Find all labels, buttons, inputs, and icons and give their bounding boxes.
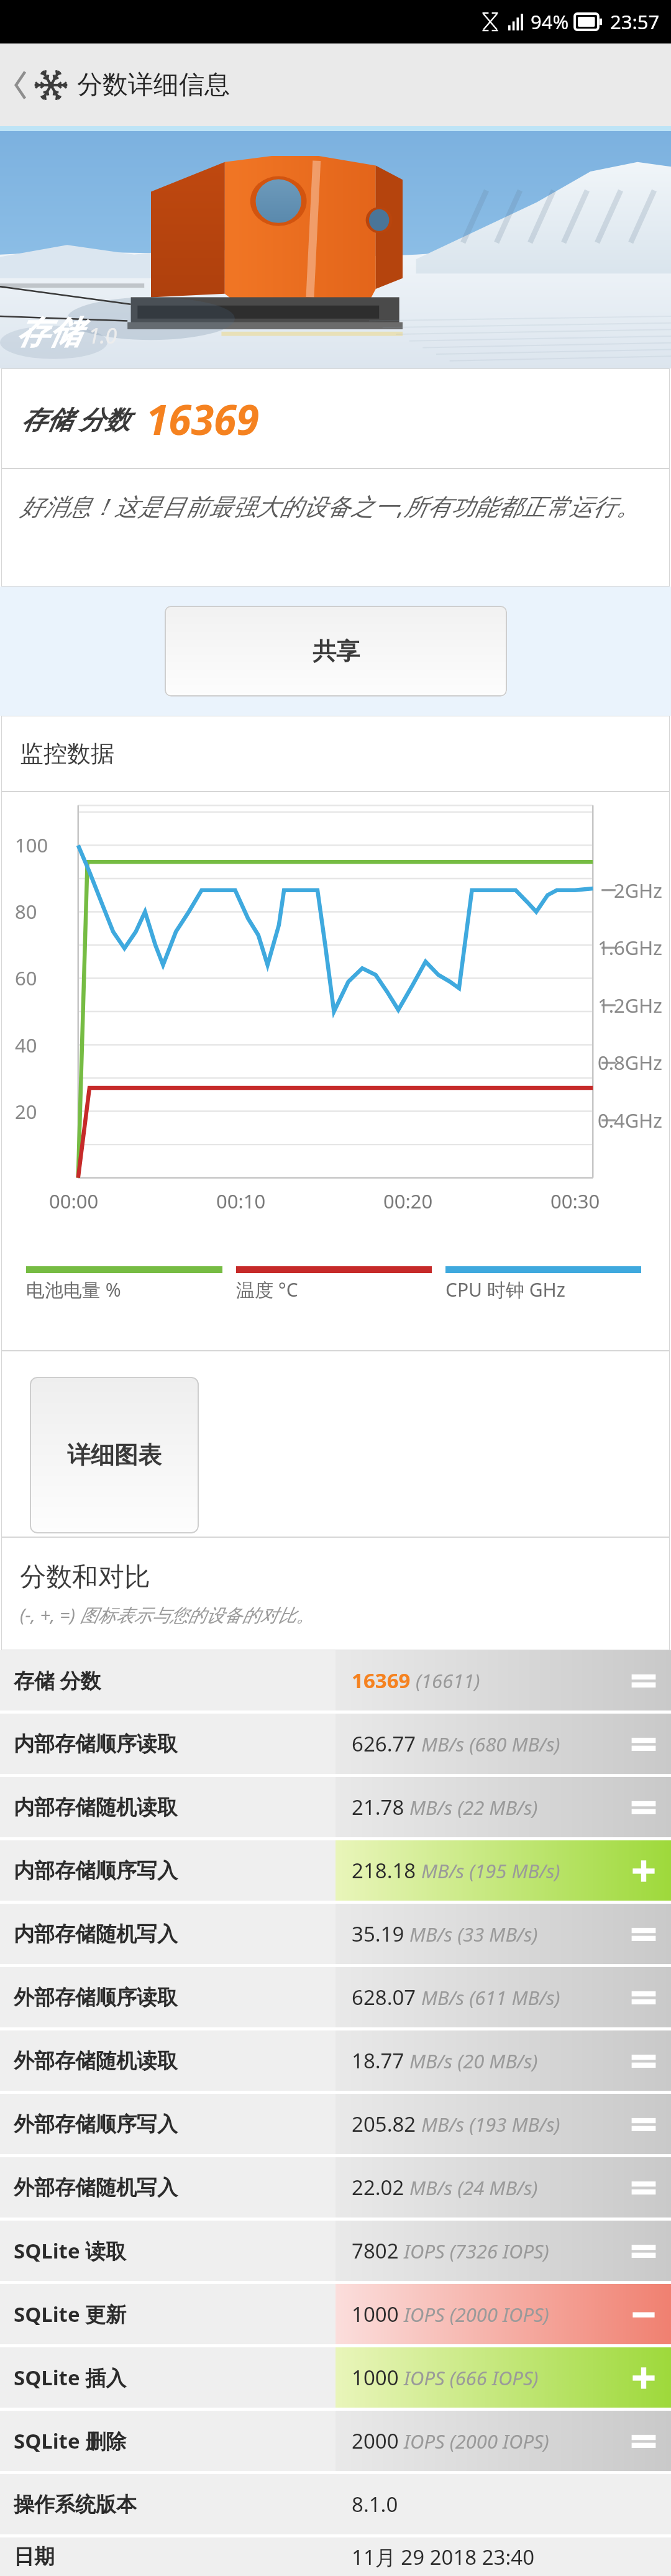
- staticText: 218.18: [352, 1857, 416, 1884]
- staticText: 内部存储随机读取: [14, 1794, 178, 1820]
- staticText: 7802: [352, 2237, 399, 2265]
- button[interactable]: 详细图表: [30, 1377, 199, 1533]
- staticText: IOPS (2000 IOPS): [404, 2428, 549, 2454]
- staticText: 存储 分数: [14, 1666, 101, 1694]
- staticText: MB/s (195 MB/s): [421, 1858, 560, 1884]
- button[interactable]: 内部存储顺序写入: [0, 1840, 671, 1901]
- staticText: 操作系统版本: [14, 2492, 137, 2518]
- staticText: 100: [15, 832, 48, 858]
- staticText: (-, +, =) 图标表示与您的设备的对比。: [20, 1602, 314, 1627]
- button[interactable]: 存储 分数: [0, 1650, 671, 1710]
- staticText: SQLite 删除: [14, 2427, 127, 2455]
- staticText: 分数和对比: [20, 1561, 150, 1594]
- staticText: 电池电量 %: [26, 1277, 121, 1302]
- button[interactable]: 外部存储顺序读取: [0, 1967, 671, 2027]
- button[interactable]: SQLite 插入: [0, 2347, 671, 2408]
- staticText: 00:30: [550, 1188, 600, 1214]
- staticText: 分数详细信息: [77, 69, 230, 101]
- staticText: CPU 时钟 GHz: [445, 1277, 565, 1302]
- staticText: IOPS (7326 IOPS): [404, 2238, 549, 2264]
- staticText: 626.77: [352, 1730, 416, 1758]
- staticText: 1000: [352, 2364, 399, 2391]
- staticText: 0.8GHz: [598, 1049, 662, 1076]
- staticText: 外部存储顺序写入: [14, 2111, 178, 2137]
- staticText: 23:57: [610, 9, 660, 35]
- staticText: 00:10: [216, 1188, 266, 1214]
- staticText: MB/s (680 MB/s): [421, 1731, 560, 1757]
- staticText: 好消息！这是目前最强大的设备之一,所有功能都正常运行。: [20, 490, 640, 522]
- staticText: 1000: [352, 2300, 399, 2328]
- staticText: 2000: [352, 2427, 399, 2455]
- button[interactable]: 内部存储随机写入: [0, 1904, 671, 1964]
- staticText: 详细图表: [67, 1440, 162, 1470]
- button[interactable]: Back: [9, 62, 32, 108]
- staticText: 00:00: [49, 1188, 99, 1214]
- button[interactable]: 内部存储顺序读取: [0, 1714, 671, 1774]
- staticText: 内部存储顺序读取: [14, 1731, 178, 1757]
- staticText: 00:20: [383, 1188, 433, 1214]
- button[interactable]: SQLite 读取: [0, 2221, 671, 2281]
- staticText: 日期: [14, 2544, 55, 2570]
- staticText: 存储 分数: [21, 401, 130, 436]
- staticText: 温度 °C: [236, 1277, 298, 1302]
- staticText: 内部存储顺序写入: [14, 1858, 178, 1884]
- staticText: (16611): [416, 1668, 480, 1694]
- staticText: SQLite 更新: [14, 2300, 127, 2328]
- button[interactable]: SQLite 更新: [0, 2284, 671, 2344]
- staticText: MB/s (24 MB/s): [409, 2175, 538, 2201]
- staticText: 94%: [531, 9, 569, 35]
- staticText: 外部存储随机写入: [14, 2175, 178, 2201]
- staticText: MB/s (33 MB/s): [409, 1921, 538, 1947]
- staticText: 2GHz: [614, 877, 662, 903]
- button[interactable]: 外部存储顺序写入: [0, 2094, 671, 2154]
- staticText: 21.78: [352, 1793, 404, 1821]
- staticText: 外部存储随机读取: [14, 2048, 178, 2074]
- staticText: 监控数据: [20, 739, 114, 769]
- staticText: 628.07: [352, 1983, 416, 2011]
- button[interactable]: 外部存储随机写入: [0, 2157, 671, 2217]
- button[interactable]: 内部存储随机读取: [0, 1777, 671, 1837]
- button[interactable]: 外部存储随机读取: [0, 2030, 671, 2091]
- staticText: 80: [15, 898, 37, 925]
- staticText: MB/s (193 MB/s): [421, 2111, 560, 2137]
- staticText: SQLite 插入: [14, 2364, 127, 2391]
- staticText: 外部存储顺序读取: [14, 1985, 178, 2011]
- staticText: 60: [15, 965, 37, 991]
- staticText: 1.0: [88, 321, 117, 350]
- staticText: 16369: [146, 391, 259, 447]
- staticText: IOPS (666 IOPS): [404, 2365, 539, 2391]
- button[interactable]: SQLite 删除: [0, 2411, 671, 2471]
- staticText: MB/s (22 MB/s): [409, 1794, 538, 1820]
- staticText: 20: [15, 1098, 37, 1125]
- button[interactable]: 日期: [0, 2537, 671, 2576]
- staticText: 共享: [313, 636, 360, 666]
- staticText: MB/s (20 MB/s): [409, 2048, 538, 2074]
- staticText: 16369: [352, 1666, 411, 1694]
- staticText: 35.19: [352, 1920, 404, 1948]
- staticText: MB/s (611 MB/s): [421, 1985, 560, 2011]
- button[interactable]: 共享: [165, 606, 507, 697]
- staticText: 存储: [16, 313, 81, 354]
- staticText: 8.1.0: [352, 2490, 398, 2518]
- staticText: 0.4GHz: [598, 1107, 662, 1133]
- staticText: 1.6GHz: [598, 934, 662, 961]
- staticText: 18.77: [352, 2047, 404, 2075]
- staticText: 11月 29 2018 23:40: [352, 2543, 535, 2571]
- staticText: 40: [15, 1032, 37, 1058]
- staticText: 205.82: [352, 2110, 416, 2138]
- staticText: IOPS (2000 IOPS): [404, 2301, 549, 2327]
- staticText: 内部存储随机写入: [14, 1921, 178, 1947]
- button[interactable]: 操作系统版本: [0, 2474, 671, 2534]
- staticText: 22.02: [352, 2173, 404, 2201]
- staticText: SQLite 读取: [14, 2237, 127, 2265]
- staticText: 1.2GHz: [598, 992, 662, 1018]
